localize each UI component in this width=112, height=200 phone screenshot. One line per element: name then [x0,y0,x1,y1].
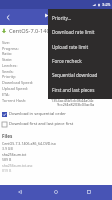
staticText: 0 B/s [48,86,57,91]
staticText: 98.3% [48,46,59,51]
staticText: Torrent Hash: [2,98,27,103]
staticText: Files [2,133,13,139]
staticText: 1354ac45b5cb0644a04c [51,98,94,103]
staticText: 819 B [2,168,12,173]
staticText: Priority: [2,74,17,79]
staticText: Download Speed: [2,80,34,85]
button[interactable]: Back [13,185,27,199]
staticText: Size: [2,40,11,45]
button[interactable]: Download rate limit [48,25,112,39]
button[interactable]: Force recheck [48,54,112,68]
staticText: 3:25 [102,2,111,8]
staticText: Downloading [48,57,72,62]
staticText: 12 (41) [48,69,60,74]
staticText: Force recheck [52,58,82,64]
staticText: Progress: [2,46,19,51]
button[interactable]: Recent apps [82,185,96,199]
staticText: Priority... [52,15,72,21]
button[interactable]: Upload rate limit [48,40,112,54]
staticText: Upload Speed: [2,86,28,91]
button[interactable]: Sequential download [48,68,112,82]
staticText: Download rate limit [52,29,95,35]
staticText: CentOS-7.3-1406-x86_64-DVD.iso [2,141,56,146]
staticText: Download in sequential order [9,111,66,117]
staticText: Download first and last piece first [9,121,74,127]
staticText: First and last pieces [52,87,95,93]
button[interactable]: Download in sequential order [1,110,112,118]
staticText: Ratio: [2,51,13,56]
staticText: State: [2,57,13,62]
button[interactable]: Download first and last piece first [1,120,112,128]
staticText: Leeches: [2,63,18,68]
staticText: sha256sum.txt.asc [2,163,33,168]
button[interactable]: Back [0,9,16,25]
button[interactable]: Resume download [40,9,52,21]
staticText: ETA: [2,92,10,97]
staticText: Upload rate limit [52,44,89,50]
staticText: sha256sum.txt [2,152,27,157]
staticText: Sequential download [52,72,98,78]
button[interactable]: Priority... [48,11,112,25]
staticText: 589 B [2,157,12,162]
staticText: 3.9 GB [2,146,13,151]
button[interactable]: First and last pieces [48,83,112,97]
button[interactable]: Home [49,185,63,199]
staticText: Seeds: [2,69,14,74]
staticText: CentOS-7.0-1406-x86_64-DVD.iso [9,27,95,35]
staticText: 9cc2f4e8203b03ac0a [57,102,95,107]
